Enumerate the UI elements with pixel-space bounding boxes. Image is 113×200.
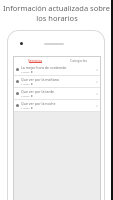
other: Abrir <box>95 92 99 96</box>
button[interactable]: Que ver por la mañana <box>13 76 101 87</box>
button[interactable]: Que ver por la tarde <box>13 88 101 99</box>
button[interactable]: Servicios <box>13 56 57 64</box>
staticText: 2 horas <box>21 106 30 109</box>
other: Abrir <box>95 68 99 72</box>
staticText: Que ver por la mañana <box>21 77 59 82</box>
staticText: 2 horas <box>21 94 30 97</box>
other: Abrir <box>95 80 99 84</box>
staticText: Que ver por la noche <box>21 101 56 106</box>
button[interactable]: Que ver por la noche <box>13 100 101 111</box>
button[interactable]: La mejor hora de contenido <box>13 64 101 75</box>
staticText: Categorías <box>70 58 88 63</box>
staticText: Servicios <box>28 58 43 63</box>
staticText: 2 horas <box>21 82 30 85</box>
staticText: La mejor hora de contenido <box>21 65 67 70</box>
staticText: Que ver por la tarde <box>21 89 55 94</box>
button[interactable]: Categorías <box>57 56 101 64</box>
staticText: 2 horas <box>21 70 30 73</box>
other: Abrir <box>95 104 99 108</box>
staticText: Información actualizada sobre <box>3 3 110 13</box>
staticText: los horarios <box>36 13 78 23</box>
